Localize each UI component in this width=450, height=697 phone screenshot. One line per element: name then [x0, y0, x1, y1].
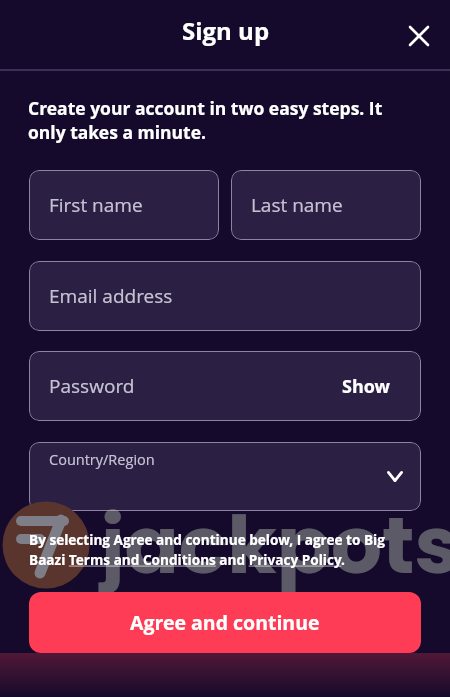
staticText: Country/Region: [49, 450, 155, 470]
staticText: Last name: [251, 192, 343, 218]
staticText: Agree and continue: [130, 609, 320, 636]
button[interactable]: First name: [29, 170, 219, 240]
staticText: By selecting Agree and continue below, I…: [29, 530, 395, 569]
staticText: Show: [342, 374, 390, 399]
button[interactable]: Password: [29, 351, 421, 421]
button[interactable]: Last name: [231, 170, 421, 240]
button[interactable]: Email address: [29, 261, 421, 331]
button[interactable]: Agree and continue: [29, 592, 421, 653]
staticText: jackpots: [101, 489, 450, 601]
staticText: Password: [49, 373, 135, 399]
staticText: Create your account in two easy steps. I…: [28, 96, 390, 144]
button[interactable]: Country/Region: [29, 442, 421, 511]
staticText: First name: [49, 192, 143, 218]
staticText: Sign up: [182, 14, 270, 47]
button[interactable]: Close: [396, 13, 442, 59]
button[interactable]: Show: [334, 366, 398, 407]
staticText: Email address: [49, 283, 173, 309]
